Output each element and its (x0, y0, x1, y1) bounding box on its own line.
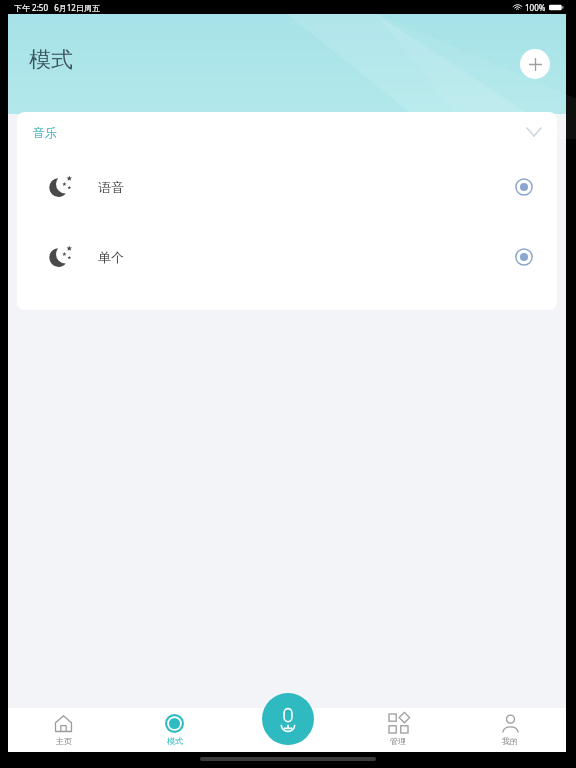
staticText: 语音 (98, 179, 124, 195)
staticText: 单个 (98, 249, 124, 265)
button[interactable]: 模式 (119, 708, 230, 752)
staticText: 模式 (167, 736, 183, 746)
button[interactable]: 我的 (454, 708, 566, 752)
button[interactable]: Voice assistant (262, 693, 314, 745)
button[interactable]: 主页 (8, 708, 119, 752)
staticText: 100% (525, 2, 546, 13)
staticText: 管理 (390, 736, 406, 746)
button[interactable]: 管理 (342, 708, 454, 752)
button[interactable]: Add mode (520, 49, 550, 79)
staticText: 主页 (56, 736, 72, 746)
button[interactable]: 单个 (17, 222, 557, 292)
staticText: 音乐 (33, 125, 57, 140)
staticText: 模式 (29, 46, 73, 74)
button[interactable]: 语音 (17, 152, 557, 222)
button[interactable]: 音乐 (17, 112, 557, 152)
staticText: 我的 (502, 736, 518, 746)
staticText: 下午 2:50 6月12日周五 (14, 2, 100, 13)
